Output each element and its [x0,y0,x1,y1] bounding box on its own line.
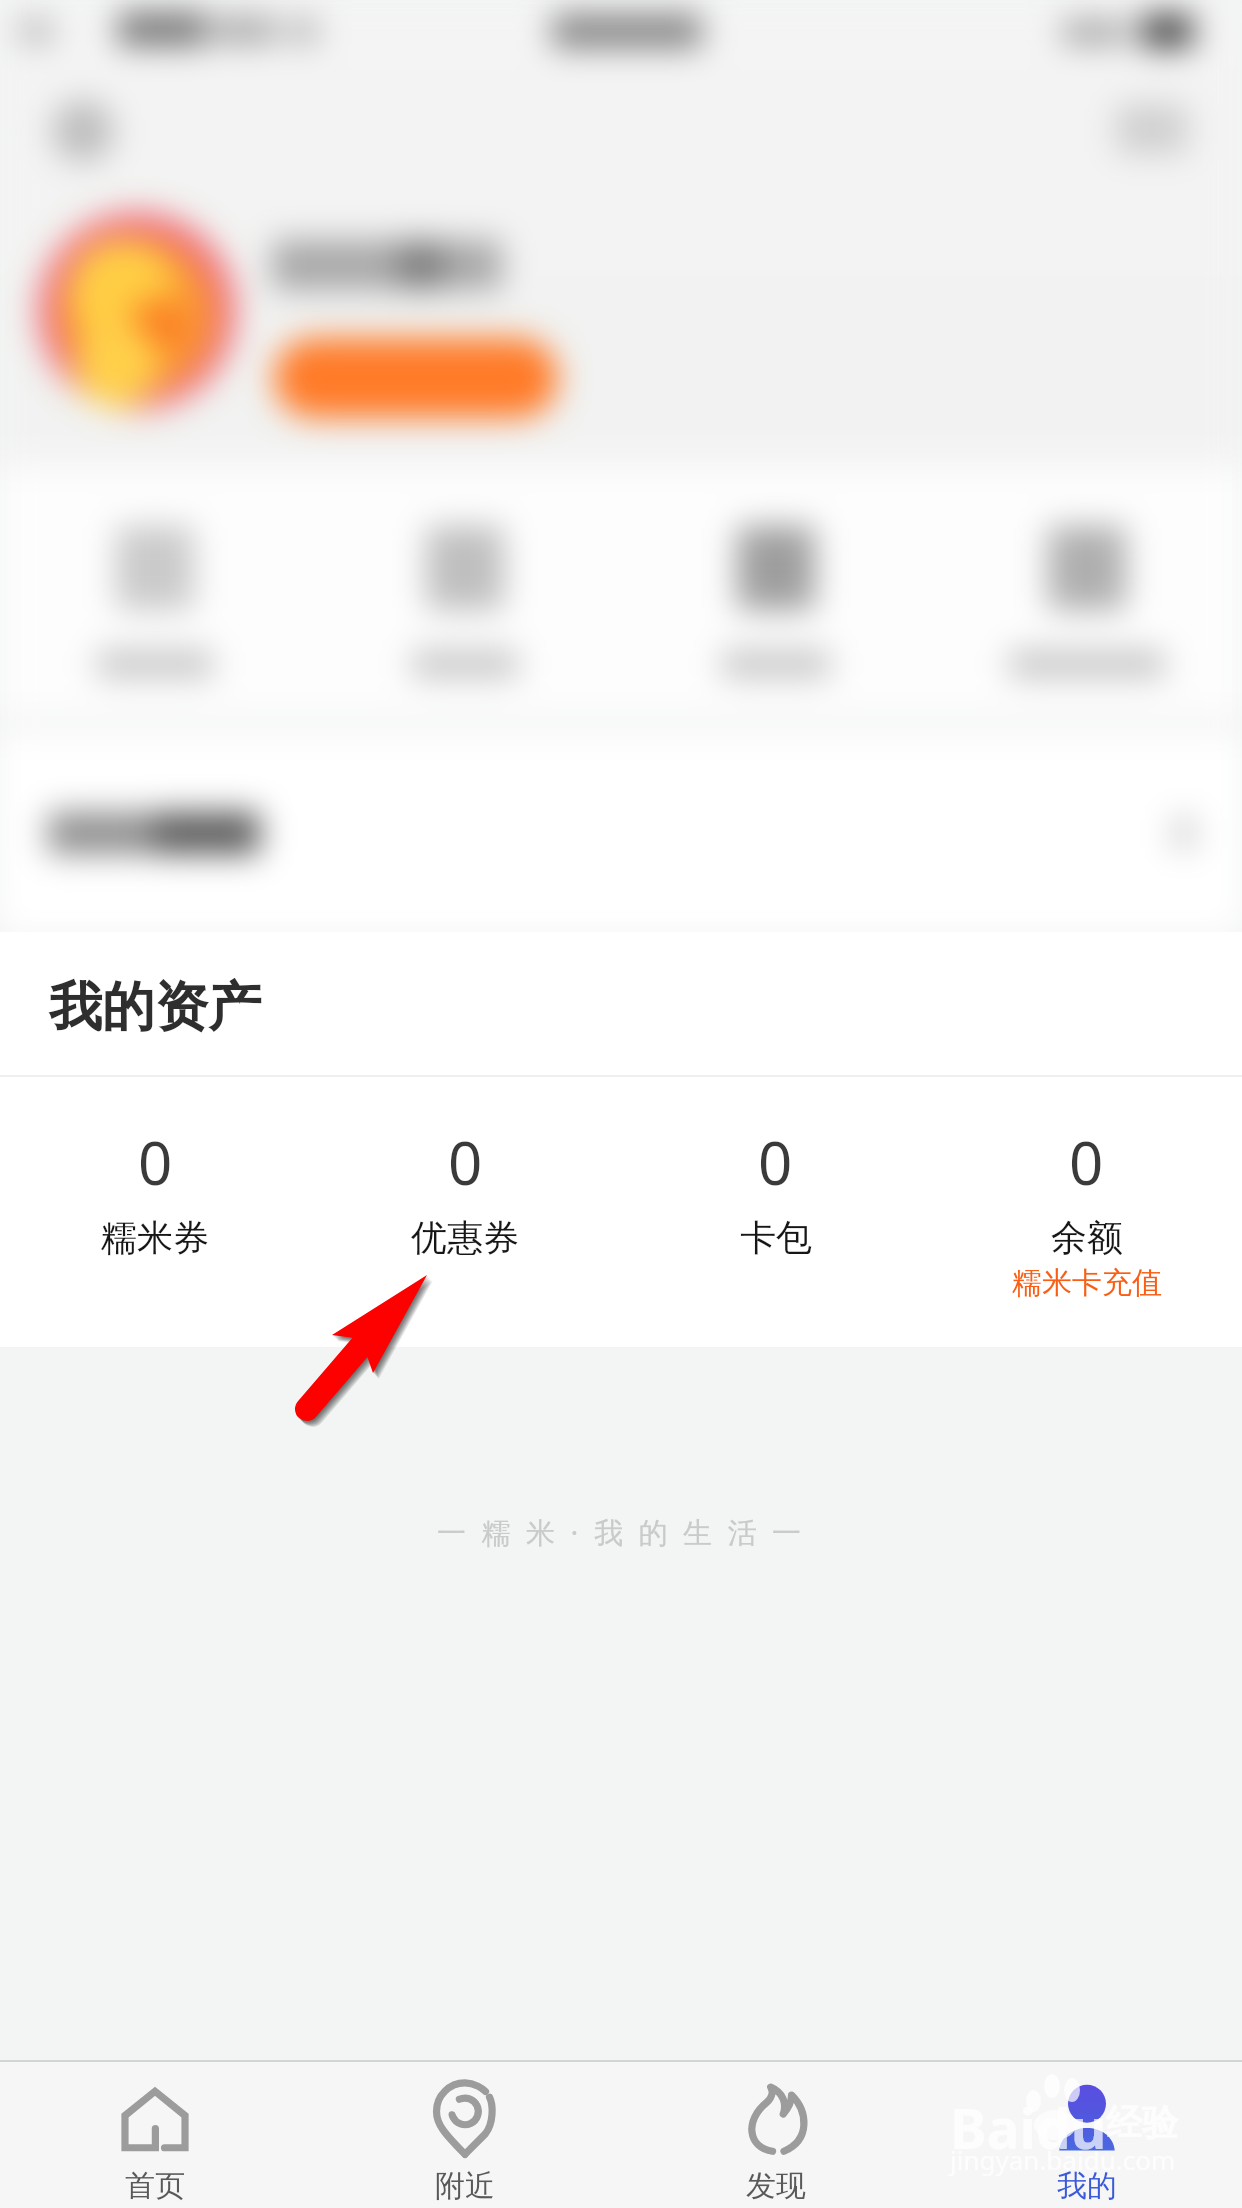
staticText: Baidu [950,2090,1107,2165]
button[interactable]: 发现 [620,2062,931,2208]
staticText: 首页 [125,2167,185,2205]
button[interactable]: 我的资产 [0,932,1242,1075]
staticText: 0 [138,1121,173,1203]
staticText: 糯米卡充值 [1012,1264,1162,1302]
staticText: 优惠券 [411,1215,519,1260]
staticText: 糯米券 [101,1215,209,1260]
button[interactable]: 附近 [310,2062,620,2208]
staticText: 卡包 [740,1215,812,1260]
staticText: 我的资产 [49,974,261,1041]
button[interactable]: 0 [310,1077,620,1347]
staticText: 0 [448,1121,483,1203]
staticText: 我的 [1057,2167,1117,2205]
staticText: 0 [1069,1121,1104,1203]
staticText: 经验 [1106,2100,1178,2145]
button[interactable]: 0 [931,1077,1242,1347]
staticText: 附近 [435,2167,495,2205]
staticText: 余额 [1051,1215,1123,1260]
button[interactable]: 首页 [0,2062,310,2208]
button[interactable]: 0 [620,1077,931,1347]
button[interactable]: 我的 [931,2062,1242,2208]
staticText: 0 [758,1121,793,1203]
staticText: 发现 [746,2167,806,2205]
staticText: 一 糯 米 · 我 的 生 活 一 [437,1512,806,1552]
staticText: jingyan.baidu.com [950,2142,1176,2177]
button[interactable]: 0 [0,1077,310,1347]
